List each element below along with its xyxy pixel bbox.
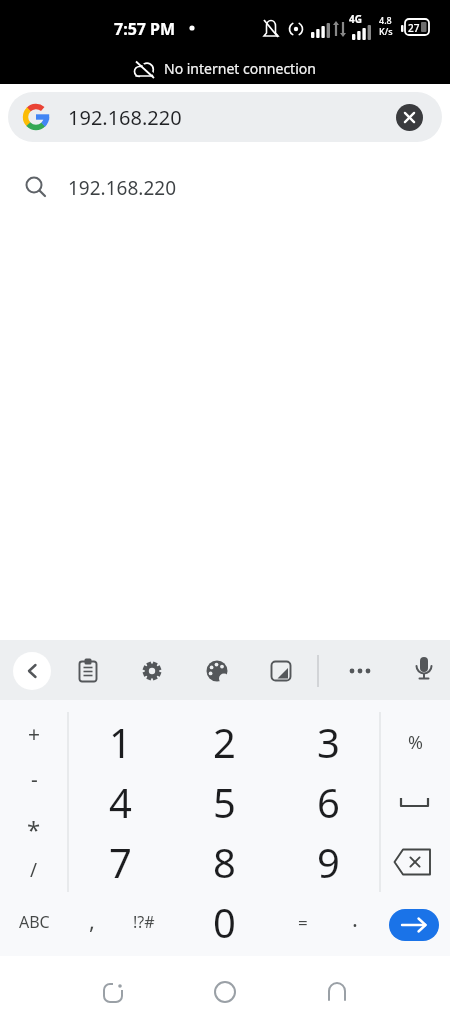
staticText: 5 xyxy=(213,775,236,829)
button[interactable]: 3 xyxy=(276,712,380,772)
staticText: / xyxy=(30,857,38,883)
staticText: = xyxy=(298,911,308,934)
button[interactable]: . xyxy=(330,888,380,948)
button[interactable]: 2 xyxy=(172,712,276,772)
button[interactable] xyxy=(396,104,423,131)
staticText: 0 xyxy=(213,895,236,949)
staticText: , xyxy=(89,905,95,935)
button[interactable]: ABC xyxy=(0,892,68,952)
button[interactable]: - xyxy=(0,757,68,802)
staticText: 4 xyxy=(109,775,132,829)
staticText: K/s xyxy=(379,25,393,37)
button[interactable]: 6 xyxy=(276,772,380,832)
button[interactable] xyxy=(13,652,51,690)
button[interactable] xyxy=(380,772,450,832)
staticText: 1 xyxy=(109,715,132,769)
staticText: 7:57 PM xyxy=(114,18,176,40)
staticText: 6 xyxy=(317,775,340,829)
staticText: ABC xyxy=(19,911,50,933)
button[interactable]: 192.168.220 xyxy=(8,92,442,142)
button[interactable]: 1 xyxy=(68,712,172,772)
button[interactable] xyxy=(201,968,249,1016)
button[interactable]: , xyxy=(68,890,116,950)
button[interactable]: !?# xyxy=(116,892,172,952)
staticText: % xyxy=(408,730,423,755)
staticText: 9 xyxy=(317,835,340,889)
button[interactable] xyxy=(89,968,137,1016)
button[interactable] xyxy=(380,832,450,892)
button[interactable]: 192.168.220 xyxy=(0,160,450,214)
staticText: 192.168.220 xyxy=(68,104,182,131)
staticText: 8 xyxy=(213,835,236,889)
staticText: 2 xyxy=(213,715,236,769)
staticText: 3 xyxy=(317,715,340,769)
button[interactable]: * xyxy=(0,807,68,852)
button[interactable] xyxy=(68,651,108,691)
staticText: No internet connection xyxy=(164,59,316,78)
staticText: 4.8 xyxy=(379,14,392,26)
button[interactable]: 5 xyxy=(172,772,276,832)
button[interactable]: 0 xyxy=(172,892,276,952)
button[interactable]: 7 xyxy=(68,832,172,892)
staticText: 7 xyxy=(109,835,132,889)
button[interactable]: 4 xyxy=(68,772,172,832)
button[interactable] xyxy=(197,651,237,691)
staticText: 4G xyxy=(349,12,362,26)
button[interactable] xyxy=(340,651,380,691)
button[interactable] xyxy=(389,909,439,941)
staticText: * xyxy=(27,813,41,846)
staticText: + xyxy=(28,720,41,749)
button[interactable]: 8 xyxy=(172,832,276,892)
button[interactable]: No internet connection xyxy=(0,55,450,84)
button[interactable] xyxy=(404,651,444,691)
button[interactable] xyxy=(261,651,301,691)
staticText: !?# xyxy=(133,911,155,933)
button[interactable] xyxy=(313,968,361,1016)
button[interactable]: 9 xyxy=(276,832,380,892)
button[interactable]: + xyxy=(0,712,68,757)
staticText: . xyxy=(352,903,358,933)
staticText: - xyxy=(31,765,38,794)
staticText: 192.168.220 xyxy=(68,175,176,201)
button[interactable]: = xyxy=(276,892,330,952)
button[interactable]: % xyxy=(380,712,450,772)
staticText: 27 xyxy=(408,21,420,35)
button[interactable]: / xyxy=(0,847,68,892)
button[interactable] xyxy=(132,651,172,691)
